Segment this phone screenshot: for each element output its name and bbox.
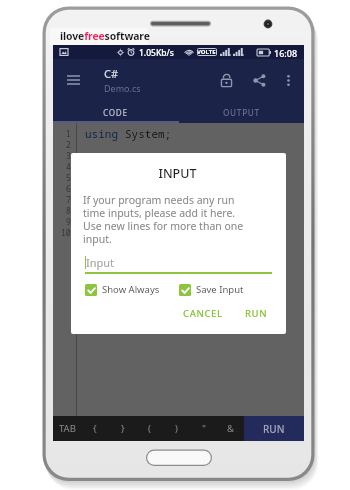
staticText: } bbox=[121, 422, 125, 435]
button[interactable]: OUTPUT bbox=[178, 101, 304, 123]
staticText: ) bbox=[175, 422, 178, 435]
staticText: 10 bbox=[61, 227, 71, 238]
staticText: Show Always bbox=[102, 283, 160, 296]
button[interactable]: ( bbox=[136, 416, 163, 441]
staticText: & bbox=[227, 422, 234, 435]
button[interactable]: } bbox=[109, 416, 136, 441]
button[interactable]: Save Input bbox=[179, 283, 244, 296]
staticText: RUN bbox=[245, 307, 268, 320]
staticText: Demo.cs bbox=[104, 82, 141, 94]
button[interactable]: Lock bbox=[215, 59, 237, 101]
button[interactable]: TAB bbox=[53, 416, 81, 441]
staticText: ( bbox=[148, 422, 151, 435]
staticText: 1.05Kb/s bbox=[139, 47, 174, 59]
staticText: Input bbox=[86, 255, 115, 270]
staticText: Save Input bbox=[196, 283, 244, 296]
button[interactable]: Menu bbox=[53, 59, 93, 101]
staticText: 16:08 bbox=[274, 47, 298, 59]
button[interactable]: More options bbox=[278, 59, 298, 101]
staticText: 5 bbox=[66, 172, 71, 183]
staticText: 6 bbox=[66, 183, 71, 194]
staticText: RUN bbox=[263, 422, 285, 436]
staticText: TAB bbox=[59, 422, 76, 435]
button[interactable]: RUN bbox=[244, 416, 304, 441]
staticText: OUTPUT bbox=[223, 107, 260, 118]
staticText: 7 bbox=[66, 194, 71, 205]
staticText: 3 bbox=[66, 150, 71, 161]
staticText: { bbox=[93, 422, 97, 435]
staticText: 1 bbox=[66, 128, 71, 139]
staticText: " bbox=[202, 422, 206, 435]
button[interactable]: " bbox=[190, 416, 217, 441]
staticText: ilovefreesoftware bbox=[60, 29, 150, 43]
button[interactable]: Share bbox=[248, 59, 270, 101]
button[interactable]: CANCEL bbox=[179, 305, 227, 322]
button[interactable]: RUN bbox=[241, 305, 272, 322]
staticText: using bbox=[85, 126, 125, 141]
staticText: 8 bbox=[66, 205, 71, 216]
button[interactable]: ) bbox=[163, 416, 190, 441]
staticText: If your program needs any run time input… bbox=[83, 193, 244, 246]
staticText: 2 bbox=[66, 139, 71, 150]
button[interactable]: Show Always bbox=[85, 283, 160, 296]
staticText: 4 bbox=[66, 161, 71, 172]
staticText: INPUT bbox=[83, 165, 272, 182]
button[interactable]: & bbox=[217, 416, 244, 441]
button[interactable]: CODE bbox=[53, 101, 178, 123]
staticText: 9 bbox=[66, 216, 71, 227]
staticText: CODE bbox=[103, 107, 128, 118]
staticText: C# bbox=[104, 66, 119, 81]
staticText: System; bbox=[125, 126, 172, 141]
button[interactable]: { bbox=[81, 416, 109, 441]
staticText: CANCEL bbox=[183, 307, 223, 320]
staticText: VOLTE1 bbox=[197, 48, 217, 56]
